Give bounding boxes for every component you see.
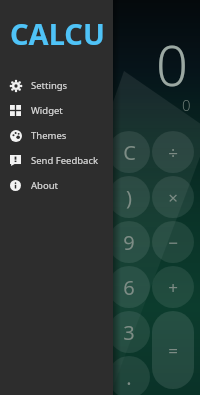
staticText: 3 (123, 319, 135, 346)
button[interactable]: = (152, 311, 194, 389)
staticText: C (123, 139, 136, 166)
button[interactable]: 6 (108, 266, 150, 308)
other: About (10, 180, 21, 191)
staticText: 6 (123, 274, 135, 301)
button[interactable]: − (152, 221, 194, 263)
button[interactable]: About (0, 173, 113, 198)
staticText: 0 (182, 95, 191, 115)
staticText: × (168, 186, 178, 209)
staticText: = (168, 339, 178, 362)
other: Widget (10, 105, 21, 116)
staticText: About (31, 179, 58, 192)
button[interactable]: ÷ (152, 131, 194, 173)
button[interactable]: 9 (108, 221, 150, 263)
button[interactable]: ) (108, 176, 150, 218)
other: Settings (10, 80, 22, 92)
button[interactable]: 3 (108, 311, 150, 353)
button[interactable]: × (152, 176, 194, 218)
button[interactable]: C (108, 131, 150, 173)
staticText: Send Feedback (31, 154, 99, 167)
staticText: ) (126, 184, 132, 211)
staticText: 9 (123, 229, 135, 256)
staticText: + (168, 276, 178, 299)
other: Themes (10, 130, 22, 142)
button[interactable]: Settings (0, 73, 113, 98)
staticText: . (126, 364, 132, 391)
staticText: ÷ (168, 141, 178, 164)
staticText: Widget (31, 104, 63, 117)
button[interactable]: Widget (0, 98, 113, 123)
staticText: CALCU (10, 14, 105, 53)
button[interactable]: + (152, 266, 194, 308)
button[interactable]: Themes (0, 123, 113, 148)
staticText: − (168, 231, 178, 254)
staticText: Themes (31, 129, 67, 142)
button[interactable]: . (108, 356, 150, 395)
staticText: Settings (31, 79, 68, 92)
staticText: 0 (156, 26, 188, 102)
other: Send Feedback (10, 155, 21, 166)
button[interactable]: Send Feedback (0, 148, 113, 173)
